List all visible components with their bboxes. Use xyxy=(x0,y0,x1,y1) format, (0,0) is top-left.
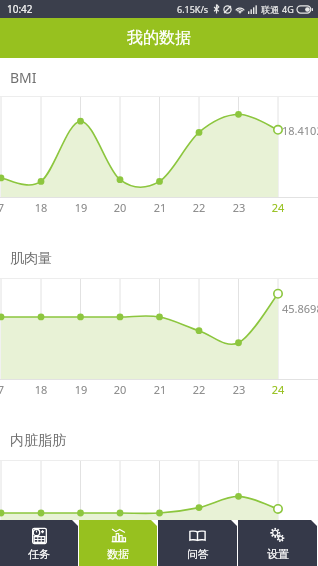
staticText: 设置 xyxy=(267,547,289,561)
staticText: 任务 xyxy=(28,547,50,561)
staticText: 我的数据 xyxy=(127,28,191,48)
staticText: 10:42 xyxy=(7,2,33,16)
staticText: 4G xyxy=(282,3,294,15)
staticText: 7 xyxy=(0,382,11,397)
staticText: 18 xyxy=(31,200,51,215)
staticText: BMI xyxy=(10,68,37,87)
staticText: 20 xyxy=(110,200,130,215)
staticText: 内脏脂肪 xyxy=(10,432,66,450)
staticText: 21 xyxy=(150,382,170,397)
staticText: 23 xyxy=(229,200,249,215)
staticText: 21 xyxy=(150,200,170,215)
staticText: 数据 xyxy=(107,547,129,561)
staticText: 20 xyxy=(110,382,130,397)
staticText: 45.8698 xyxy=(282,301,318,316)
staticText: 6.15K/s xyxy=(177,3,209,15)
staticText: 联通 xyxy=(261,4,279,15)
staticText: 24 xyxy=(268,382,288,397)
staticText: 19 xyxy=(71,382,91,397)
staticText: 19 xyxy=(71,200,91,215)
staticText: 22 xyxy=(189,382,209,397)
staticText: 24 xyxy=(268,200,288,215)
button[interactable]: 问答 xyxy=(158,520,237,566)
staticText: 7 xyxy=(0,200,11,215)
staticText: 问答 xyxy=(187,547,209,561)
staticText: 肌肉量 xyxy=(10,250,52,268)
staticText: 18.4102 xyxy=(282,123,318,138)
button[interactable]: 设置 xyxy=(238,520,317,566)
button[interactable]: 任务 xyxy=(0,520,78,566)
staticText: 23 xyxy=(229,382,249,397)
staticText: 22 xyxy=(189,200,209,215)
button[interactable]: 数据 xyxy=(79,520,157,566)
staticText: 18 xyxy=(31,382,51,397)
